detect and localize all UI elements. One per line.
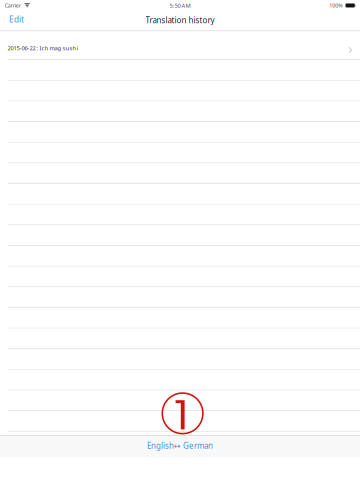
staticText: Translation history <box>145 15 214 26</box>
staticText: Edit <box>9 14 24 25</box>
button[interactable]: 2015-06-22 : Ich mag sushi <box>0 31 360 60</box>
staticText: English↔ German <box>147 440 213 451</box>
staticText: 2015-06-22 : Ich mag sushi <box>8 44 78 52</box>
staticText: 5:50 AM <box>169 2 190 9</box>
button[interactable]: English↔ German <box>140 438 220 453</box>
staticText: 100% <box>329 2 342 9</box>
staticText: Carrier <box>5 2 21 9</box>
button[interactable]: Edit <box>3 11 29 27</box>
